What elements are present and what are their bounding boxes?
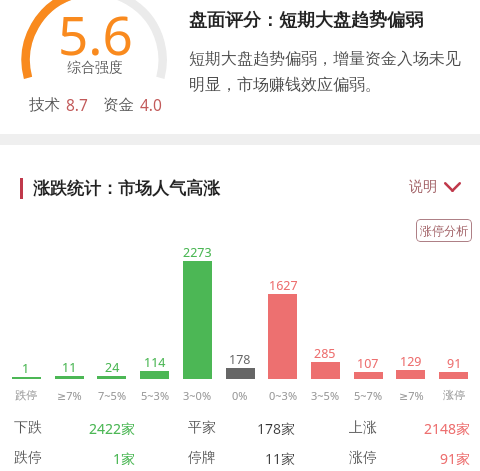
- staticText: 8.7: [66, 94, 88, 115]
- staticText: 2422家: [89, 419, 136, 435]
- button[interactable]: 上涨: [349, 419, 471, 435]
- staticText: 114: [144, 354, 166, 371]
- staticText: 上涨: [349, 419, 377, 435]
- staticText: 11家: [265, 449, 296, 465]
- staticText: 4.0: [140, 94, 162, 115]
- staticText: 0~3%: [269, 388, 298, 403]
- staticText: 129: [400, 353, 422, 370]
- button[interactable]: 说明: [401, 172, 469, 202]
- staticText: ≥7%: [399, 388, 424, 403]
- staticText: 1家: [113, 449, 136, 465]
- staticText: 107: [357, 355, 379, 372]
- button[interactable]: 平家: [188, 419, 296, 435]
- staticText: 说明: [409, 178, 437, 196]
- staticText: 5~3%: [141, 388, 170, 403]
- staticText: ≥7%: [57, 388, 82, 403]
- staticText: 91: [447, 355, 462, 372]
- staticText: 跌停: [15, 388, 37, 402]
- staticText: 24: [105, 359, 120, 376]
- staticText: 综合强度: [67, 59, 123, 77]
- staticText: 7~5%: [98, 388, 127, 403]
- staticText: 1627: [269, 277, 298, 294]
- staticText: 91家: [440, 449, 471, 465]
- staticText: 2273: [183, 244, 212, 261]
- staticText: 5~7%: [354, 388, 383, 403]
- staticText: 3~0%: [183, 388, 212, 403]
- staticText: 涨停: [443, 388, 465, 402]
- button[interactable]: 涨停: [349, 449, 471, 465]
- staticText: 停牌: [188, 449, 216, 465]
- staticText: 178家: [257, 419, 296, 435]
- staticText: 短期大盘趋势偏弱，增量资金入场未见明显，市场赚钱效应偏弱。: [189, 49, 469, 95]
- button[interactable]: 跌停: [14, 449, 136, 465]
- staticText: 涨停分析: [420, 223, 468, 238]
- staticText: 3~5%: [311, 388, 340, 403]
- staticText: 技术: [29, 95, 60, 115]
- button[interactable]: 涨停分析: [416, 219, 472, 242]
- staticText: 285: [314, 345, 336, 362]
- button[interactable]: 下跌: [14, 419, 136, 435]
- staticText: 1: [22, 360, 30, 377]
- button[interactable]: 停牌: [188, 449, 296, 465]
- staticText: 11: [62, 359, 77, 376]
- staticText: 178: [229, 351, 251, 368]
- staticText: 2148家: [424, 419, 471, 435]
- staticText: 盘面评分：短期大盘趋势偏弱: [189, 9, 423, 32]
- staticText: 下跌: [14, 419, 42, 435]
- staticText: 0%: [232, 388, 248, 403]
- staticText: 资金: [103, 95, 134, 115]
- staticText: 涨跌统计：市场人气高涨: [33, 178, 220, 199]
- staticText: 跌停: [14, 449, 42, 465]
- staticText: 平家: [188, 419, 216, 435]
- staticText: 5.6: [58, 0, 133, 70]
- staticText: 涨停: [349, 449, 377, 465]
